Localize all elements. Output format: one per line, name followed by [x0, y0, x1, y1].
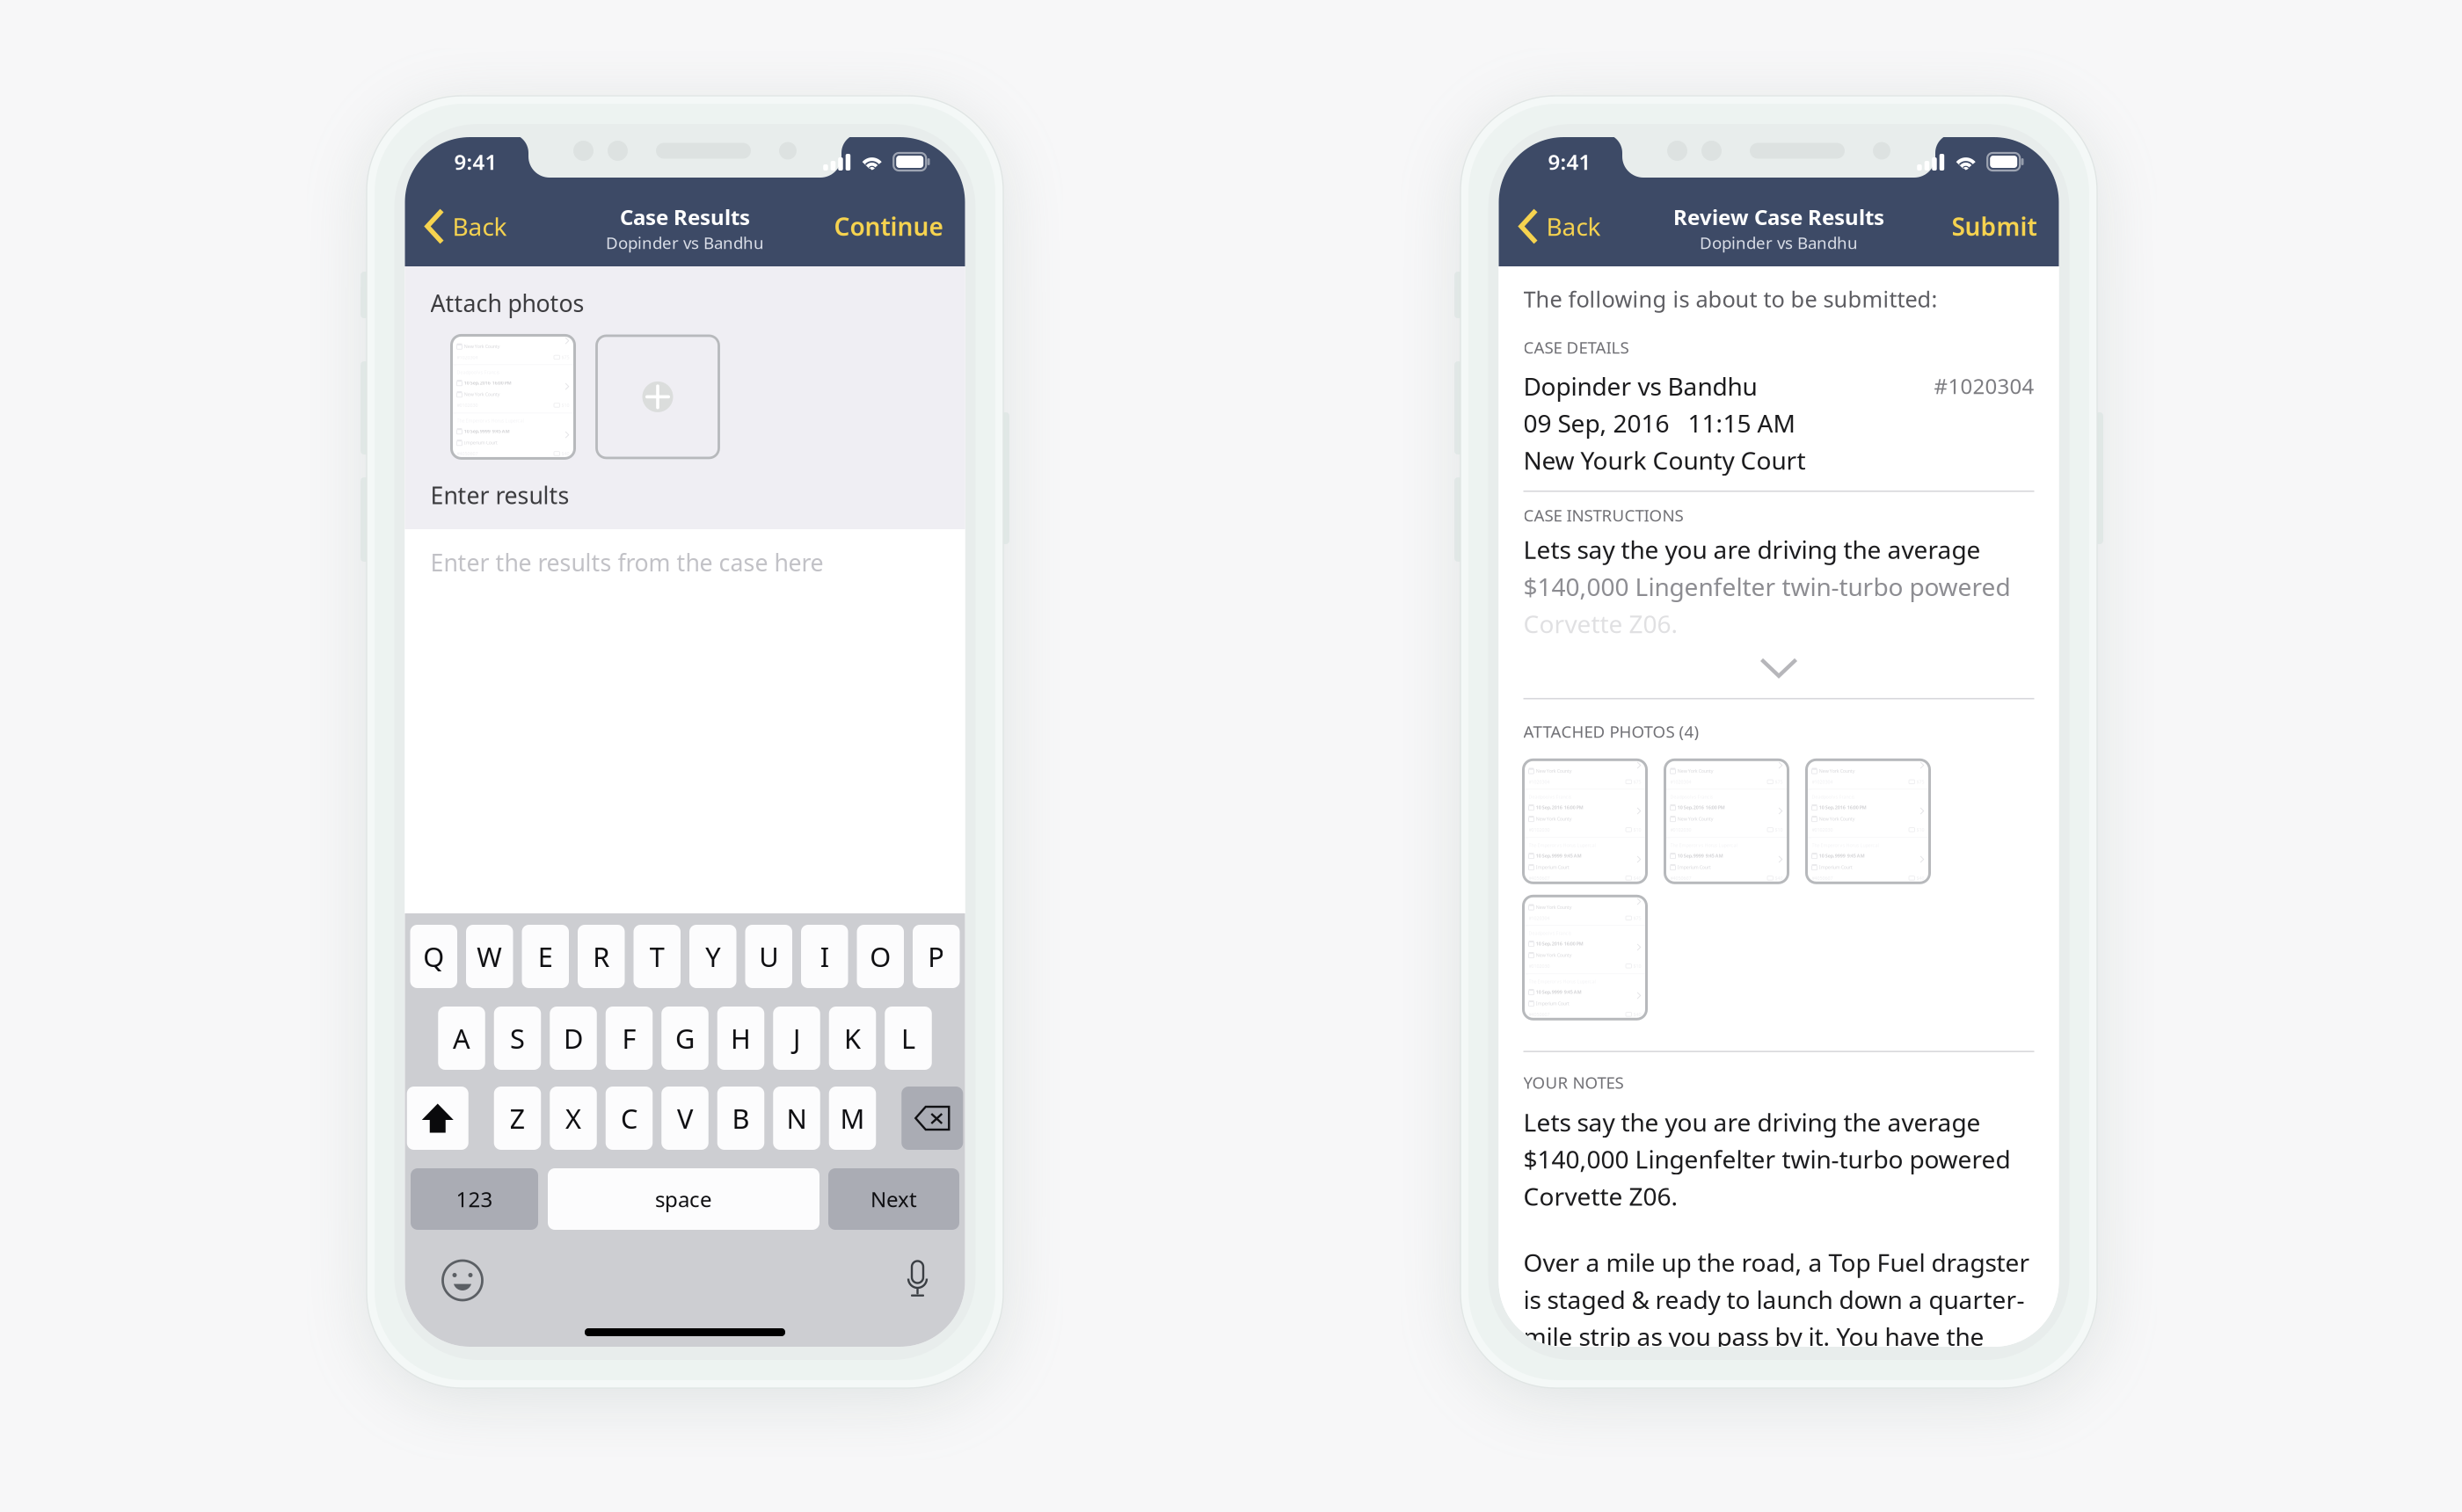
- staticText: New York County: [1536, 952, 1572, 958]
- button[interactable]: I: [801, 925, 848, 988]
- staticText: Case Results: [620, 203, 750, 231]
- staticText: Review Case Results: [1673, 203, 1884, 231]
- staticText: W: [477, 938, 502, 974]
- staticText: Next: [870, 1185, 917, 1213]
- button[interactable]: Attached photo 2: [1665, 760, 1788, 883]
- button[interactable]: Attached photo 4: [1523, 896, 1646, 1019]
- button[interactable]: Add photo: [597, 336, 719, 458]
- staticText: 10 Sep, 2016 16:00 PM: [1536, 940, 1583, 947]
- button[interactable]: space: [548, 1168, 819, 1230]
- staticText: Submit: [1952, 210, 2037, 243]
- staticText: K: [844, 1020, 861, 1056]
- staticText: G: [675, 1020, 695, 1056]
- staticText: $140,000 Lingenfelter twin-turbo powered: [1523, 1143, 2010, 1175]
- button[interactable]: W: [466, 925, 513, 988]
- button[interactable]: T: [634, 925, 681, 988]
- staticText: 10 Sep, 2016 16:00 PM: [1536, 804, 1583, 810]
- staticText: 9:41: [1548, 148, 1591, 176]
- staticText: #1020304: [1934, 372, 2034, 400]
- staticText: #0102030: [1529, 827, 1550, 833]
- staticText: ATTACHED PHOTOS (4): [1523, 720, 1699, 742]
- button[interactable]: F: [606, 1007, 653, 1070]
- button[interactable]: G: [661, 1007, 708, 1070]
- staticText: N: [787, 1100, 807, 1136]
- staticText: $75: [1916, 779, 1924, 785]
- staticText: Imperium Court: [464, 439, 497, 446]
- staticText: 10 Sep, 9999 9:45 AM: [1677, 853, 1723, 859]
- button[interactable]: P: [913, 925, 960, 988]
- button[interactable]: Back: [1499, 184, 1613, 269]
- staticText: Z: [510, 1100, 525, 1136]
- staticText: #4050607: [1812, 875, 1833, 881]
- button[interactable]: A: [438, 1007, 485, 1070]
- button[interactable]: B: [717, 1087, 764, 1150]
- staticText: Corvette Z06.: [1523, 1180, 1678, 1213]
- staticText: Enter results: [430, 479, 569, 511]
- button[interactable]: 123: [411, 1168, 538, 1230]
- staticText: 10 Sep, 9999 9:45 AM: [464, 428, 510, 434]
- button[interactable]: C: [606, 1087, 653, 1150]
- staticText: C: [621, 1100, 637, 1136]
- staticText: #4050607: [1529, 875, 1550, 881]
- staticText: F: [622, 1020, 636, 1056]
- button[interactable]: R: [578, 925, 625, 988]
- button[interactable]: Emoji keyboard: [442, 1260, 483, 1301]
- button[interactable]: M: [829, 1087, 876, 1150]
- button[interactable]: D: [550, 1007, 597, 1070]
- button[interactable]: Attached photo 1: [1523, 760, 1646, 883]
- staticText: 10 Sep, 9999 9:45 AM: [1536, 989, 1582, 995]
- button[interactable]: Submit: [1939, 184, 2059, 269]
- staticText: O: [870, 938, 891, 974]
- button[interactable]: Delete: [901, 1087, 963, 1150]
- staticText: $10: [1633, 963, 1641, 969]
- staticText: $40: [1633, 875, 1641, 881]
- button[interactable]: N: [773, 1087, 820, 1150]
- button[interactable]: Back: [405, 184, 519, 269]
- button[interactable]: Continue: [822, 184, 965, 269]
- staticText: is staged & ready to launch down a quart…: [1523, 1283, 2025, 1316]
- staticText: 123: [456, 1185, 493, 1213]
- staticText: R: [593, 938, 610, 974]
- staticText: T: [650, 938, 665, 974]
- button[interactable]: Attached photo 3: [1806, 760, 1930, 883]
- staticText: #0102030: [1529, 963, 1550, 969]
- button[interactable]: Q: [410, 925, 457, 988]
- staticText: Q: [423, 938, 444, 974]
- staticText: 10 Sep, 2016 16:00 PM: [464, 380, 511, 386]
- staticText: #0102030: [1812, 827, 1833, 833]
- button[interactable]: X: [550, 1087, 597, 1150]
- staticText: Continue: [834, 210, 943, 243]
- button[interactable]: Expand case instructions: [1523, 640, 2034, 698]
- button[interactable]: Shift: [407, 1087, 468, 1150]
- button[interactable]: U: [745, 925, 792, 988]
- staticText: Imperium Court: [1536, 864, 1569, 870]
- button[interactable]: E: [522, 925, 569, 988]
- button[interactable]: K: [829, 1007, 876, 1070]
- button[interactable]: Attached photo 1: [452, 335, 575, 458]
- staticText: New York County: [464, 391, 500, 397]
- staticText: Imperium Court: [1677, 864, 1711, 870]
- button[interactable]: O: [857, 925, 904, 988]
- staticText: New York County: [1819, 768, 1855, 774]
- staticText: V: [677, 1100, 693, 1136]
- button[interactable]: Next: [828, 1168, 959, 1230]
- button[interactable]: S: [494, 1007, 541, 1070]
- staticText: $40: [1775, 875, 1783, 881]
- staticText: $140,000 Lingenfelter twin-turbo powered: [1523, 570, 2010, 603]
- button[interactable]: H: [717, 1007, 764, 1070]
- staticText: H: [731, 1020, 751, 1056]
- button[interactable]: Y: [689, 925, 736, 988]
- button[interactable]: Z: [494, 1087, 541, 1150]
- staticText: #4050607: [1670, 875, 1691, 881]
- button[interactable]: L: [885, 1007, 932, 1070]
- button[interactable]: V: [661, 1087, 708, 1150]
- button[interactable]: J: [773, 1007, 820, 1070]
- button[interactable]: Dictation: [907, 1261, 928, 1300]
